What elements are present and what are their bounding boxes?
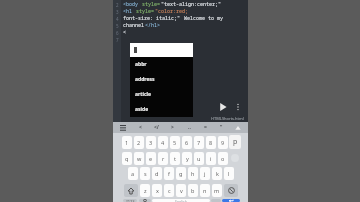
- button[interactable]: article: [130, 87, 193, 102]
- button[interactable]: z: [140, 184, 150, 197]
- button[interactable]: More options: [231, 100, 245, 114]
- staticText: o: [221, 155, 225, 162]
- button[interactable]: address: [130, 72, 193, 87]
- staticText: l: [228, 170, 230, 177]
- button[interactable]: aside: [130, 102, 193, 117]
- staticText: <body: [123, 1, 142, 8]
- button[interactable]: 1: [122, 136, 132, 149]
- staticText: <: [139, 124, 142, 131]
- staticText: <: [123, 29, 127, 36]
- staticText: v: [180, 187, 183, 194]
- button[interactable]: p: [229, 135, 241, 149]
- button[interactable]: =: [199, 122, 211, 133]
- button[interactable]: 2: [134, 136, 144, 149]
- button[interactable]: f: [164, 167, 174, 180]
- staticText: 1: [125, 139, 129, 146]
- button[interactable]: 5: [170, 136, 180, 149]
- button[interactable]: abbr: [130, 57, 193, 72]
- button[interactable]: Shift: [124, 184, 138, 197]
- button[interactable]: </: [150, 122, 162, 133]
- button[interactable]: [229, 151, 241, 165]
- button[interactable]: Space: [152, 199, 210, 202]
- button[interactable]: 8: [206, 136, 216, 149]
- staticText: i: [210, 155, 212, 162]
- button[interactable]: k: [212, 167, 222, 180]
- staticText: 9: [221, 139, 225, 146]
- staticText: e: [149, 155, 153, 162]
- button[interactable]: l: [224, 167, 234, 180]
- staticText: 5: [116, 23, 119, 29]
- staticText: English: [175, 199, 187, 202]
- staticText: address: [135, 76, 155, 83]
- button[interactable]: g: [176, 167, 186, 180]
- button[interactable]: x: [152, 184, 162, 197]
- button[interactable]: c: [164, 184, 174, 197]
- button[interactable]: 9: [218, 136, 228, 149]
- staticText: >: [171, 124, 174, 131]
- button[interactable]: o: [218, 152, 228, 165]
- button[interactable]: Run: [215, 99, 231, 115]
- button[interactable]: j: [200, 167, 210, 180]
- staticText: a: [131, 170, 135, 177]
- staticText: </: [154, 124, 159, 131]
- button[interactable]: 6: [182, 136, 192, 149]
- staticText: t: [174, 155, 176, 162]
- staticText: abbr: [135, 61, 147, 68]
- button[interactable]: ..: [183, 122, 195, 133]
- button[interactable]: w: [134, 152, 144, 165]
- button[interactable]: r: [158, 152, 168, 165]
- staticText: </h1>: [145, 22, 161, 29]
- staticText: 2: [116, 2, 119, 8]
- staticText: article: [135, 91, 151, 98]
- button[interactable]: 3: [146, 136, 156, 149]
- staticText: =: [204, 124, 207, 131]
- button[interactable]: i: [206, 152, 216, 165]
- button[interactable]: [130, 43, 193, 57]
- staticText: HTMLShorts.html: [211, 116, 244, 121]
- button[interactable]: v: [176, 184, 186, 197]
- button[interactable]: n: [200, 184, 210, 197]
- button[interactable]: Symbols: [123, 199, 137, 202]
- staticText: r: [162, 155, 165, 162]
- staticText: 3: [116, 9, 119, 15]
- button[interactable]: 4: [158, 136, 168, 149]
- button[interactable]: >: [166, 122, 178, 133]
- staticText: 4: [116, 16, 119, 22]
- staticText: h: [191, 170, 195, 177]
- button[interactable]: e: [146, 152, 156, 165]
- button[interactable]: Snippets: [117, 122, 129, 133]
- staticText: p: [233, 137, 238, 147]
- button[interactable]: m: [212, 184, 222, 197]
- button[interactable]: <: [134, 122, 146, 133]
- staticText: g: [179, 170, 183, 177]
- staticText: 7: [116, 37, 119, 43]
- button[interactable]: t: [170, 152, 180, 165]
- button[interactable]: d: [152, 167, 162, 180]
- button[interactable]: h: [188, 167, 198, 180]
- button[interactable]: ": [215, 122, 227, 133]
- staticText: 7: [197, 139, 201, 146]
- button[interactable]: 7: [194, 136, 204, 149]
- staticText: f: [168, 170, 170, 177]
- button[interactable]: Backspace: [224, 184, 238, 197]
- staticText: 6: [185, 139, 189, 146]
- staticText: "color:red;: [155, 8, 189, 15]
- button[interactable]: b: [188, 184, 198, 197]
- staticText: q: [125, 155, 129, 162]
- button[interactable]: Enter: [222, 199, 240, 202]
- staticText: <h1: [123, 8, 136, 15]
- button[interactable]: q: [122, 152, 132, 165]
- button[interactable]: s: [140, 167, 150, 180]
- button[interactable]: Emoji: [139, 199, 151, 202]
- staticText: 3: [149, 139, 153, 146]
- staticText: aside: [135, 106, 149, 113]
- staticText: s: [144, 170, 147, 177]
- staticText: "text-align:center;": [161, 1, 222, 8]
- button[interactable]: Expand: [232, 122, 244, 133]
- staticText: w: [137, 155, 142, 162]
- button[interactable]: u: [194, 152, 204, 165]
- button[interactable]: y: [182, 152, 192, 165]
- staticText: k: [216, 170, 219, 177]
- button[interactable]: a: [128, 167, 138, 180]
